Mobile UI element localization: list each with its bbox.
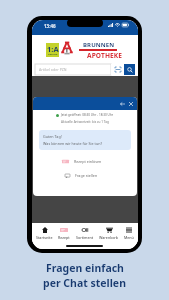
staticText: Rezept [58,235,70,240]
button[interactable]: Schließen [127,100,135,108]
staticText: 13:46 [44,23,56,29]
button[interactable]: Rezept [57,226,71,240]
button[interactable]: Scan [111,64,124,75]
button[interactable]: Warenkorb [98,226,120,240]
staticText: APOTHEKE [87,51,123,60]
staticText: Fragen einfach [46,261,124,275]
staticText: per Chat stellen [43,276,126,290]
staticText: Aktuelle Antwortzeit: bis zu 1 Tag [33,120,137,124]
button[interactable]: Zurück [118,100,126,108]
staticText: Was können wir heute für Sie tun? [43,141,103,146]
staticText: Artikel oder PZN [39,67,67,72]
button[interactable]: Menü [123,226,135,240]
staticText: Jetzt geöffnet: 08:30 Uhr - 18:30 Uhr [61,113,114,117]
button[interactable]: Suchen [124,64,135,75]
button[interactable]: Startseite [35,226,54,240]
staticText: 1:A [47,44,59,54]
staticText: Frage stellen [75,173,98,178]
button[interactable]: Frage stellen [65,172,98,179]
button[interactable]: Sortiment [75,226,95,240]
staticText: Rezept einlösen [74,159,102,164]
staticText: Warenkorb [99,235,119,240]
button[interactable]: Rezept einlösen [62,158,102,165]
staticText: Startseite [36,235,53,240]
staticText: Menü [124,235,134,240]
button[interactable]: Artikel oder PZN [35,64,111,75]
staticText: Sortiment [76,235,94,240]
staticText: GESUND [48,53,58,56]
staticText: Guten Tag! [43,134,62,139]
staticText: BRUNNEN [83,41,115,49]
